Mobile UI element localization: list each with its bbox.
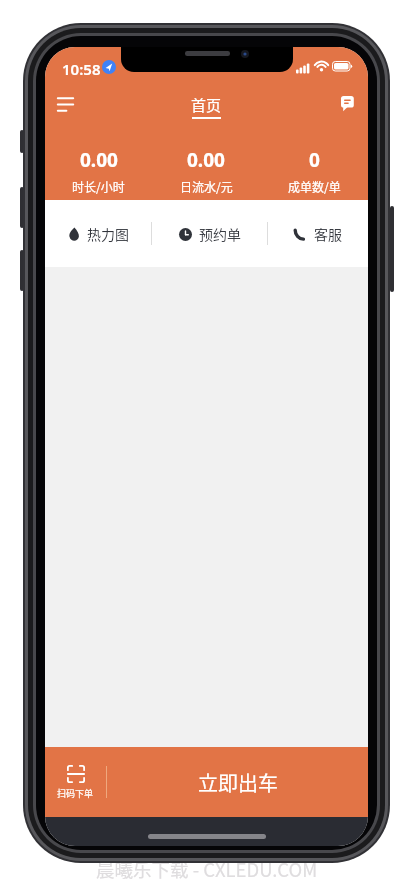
staticText: 扫码下单 (57, 787, 94, 800)
staticText: 预约单 (199, 224, 241, 244)
button[interactable]: 0.00 (45, 147, 152, 195)
button[interactable]: 立即出车 (107, 747, 368, 817)
staticText: 10:58 (62, 59, 101, 79)
staticText: 成单数/单 (288, 178, 341, 195)
staticText: 0 (309, 147, 320, 173)
staticText: 晨曦乐下载 - CXLEDU.COM (96, 856, 318, 883)
button[interactable]: 客服 (268, 200, 368, 267)
staticText: 客服 (314, 224, 342, 244)
button[interactable] (49, 87, 83, 119)
staticText: 立即出车 (198, 768, 278, 797)
button[interactable]: 热力图 (45, 200, 151, 267)
staticText: 首页 (191, 94, 222, 116)
button[interactable]: 预约单 (152, 200, 267, 267)
button[interactable]: 0 (260, 147, 368, 195)
button[interactable]: 扫码下单 (45, 747, 106, 817)
staticText: 日流水/元 (180, 178, 233, 195)
staticText: 热力图 (87, 224, 129, 244)
button[interactable]: 0.00 (152, 147, 260, 195)
staticText: 0.00 (80, 147, 118, 173)
staticText: 0.00 (187, 147, 225, 173)
button[interactable] (333, 89, 363, 119)
staticText: 时长/小时 (72, 178, 125, 195)
